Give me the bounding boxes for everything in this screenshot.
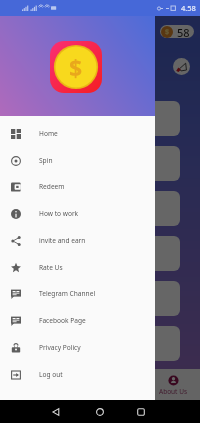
button[interactable]: invite and earn [0, 227, 155, 254]
button[interactable]: About Us [151, 375, 195, 396]
button[interactable]: Recents [137, 408, 145, 416]
staticText: About Us [159, 387, 188, 396]
button[interactable]: Announcements [173, 58, 190, 75]
button[interactable]: Back [52, 408, 60, 416]
staticText: $ [69, 52, 83, 83]
button[interactable]: Rate Us [0, 254, 155, 281]
staticText: Redeem [39, 182, 65, 191]
button[interactable]: Watch short video and earn money [12, 101, 180, 136]
staticText: Watch short video and earn money [20, 210, 135, 220]
button[interactable]: Home [5, 375, 49, 396]
staticText: Watch short video and earn money [20, 345, 135, 355]
button[interactable]: Privacy Policy [0, 334, 155, 361]
button[interactable]: Home [96, 408, 104, 416]
staticText: 58 [177, 25, 190, 38]
staticText: Daily Task [20, 106, 58, 117]
button[interactable]: Watch short video and earn money [12, 326, 180, 361]
staticText: Daily Task [20, 286, 58, 297]
button[interactable]: Telegram Channel [0, 280, 155, 307]
button[interactable]: Log out [0, 361, 155, 388]
staticText: Facebook Page [39, 316, 86, 325]
staticText: Telegram Channel [39, 289, 96, 298]
staticText: Home [39, 129, 58, 138]
button[interactable]: Redeem [0, 173, 155, 200]
button[interactable]: Watch short video and earn money [12, 236, 180, 271]
button[interactable]: Watch short video and earn money [12, 281, 180, 316]
staticText: Rate Us [39, 263, 63, 272]
staticText: $ [165, 27, 170, 37]
button[interactable]: Watch short video and earn money [12, 191, 180, 226]
staticText: Spin [39, 156, 53, 165]
button[interactable]: Watch short video and earn money [12, 146, 180, 181]
staticText: invite and earn [39, 236, 86, 245]
staticText: Log out [39, 370, 63, 379]
button[interactable]: Spin [0, 147, 155, 174]
staticText: Daily Task [20, 241, 58, 252]
staticText: Watch short video and earn money [20, 120, 135, 130]
button[interactable]: Facebook Page [0, 307, 155, 334]
staticText: Privacy Policy [39, 343, 81, 352]
button[interactable]: Spin [54, 375, 98, 396]
button[interactable]: Home [0, 120, 155, 147]
button[interactable]: $ [160, 25, 194, 38]
button[interactable]: How to work [0, 200, 155, 227]
staticText: How to work [39, 209, 79, 218]
staticText: Daily Task [20, 151, 58, 162]
staticText: 4.58 [181, 3, 196, 13]
